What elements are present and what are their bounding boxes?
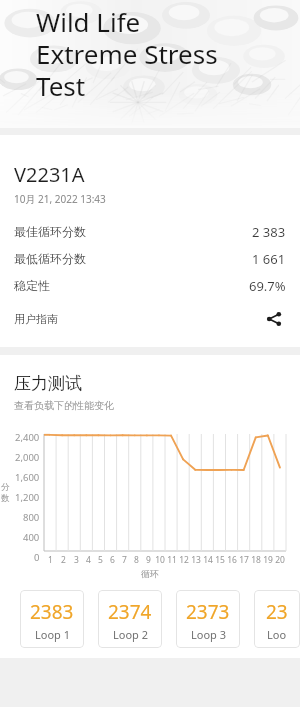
staticText: 2374 [108,599,152,625]
staticText: 19 [263,554,273,566]
button[interactable]: 最佳循环分数 [14,218,286,245]
staticText: V2231A [14,161,85,188]
staticText: 9 [146,554,151,566]
staticText: 1,600 [15,471,40,484]
staticText: 10 [155,554,165,566]
button[interactable]: 用户指南 [14,305,286,333]
staticText: 稳定性 [14,278,50,293]
staticText: 最低循环分数 [14,251,86,266]
button[interactable]: 稳定性 [14,272,286,299]
staticText: 11 [167,554,177,566]
staticText: Loop 3 [191,627,226,642]
staticText: 0 [34,551,40,564]
button[interactable]: 23 [254,590,300,648]
button[interactable]: 2383 [20,590,84,648]
staticText: 5 [98,554,103,566]
staticText: 16 [227,554,237,566]
staticText: 用户指南 [14,312,58,326]
staticText: 12 [179,554,189,566]
button[interactable]: 最低循环分数 [14,245,286,272]
staticText: Loo [267,627,287,642]
staticText: 8 [134,554,139,566]
staticText: 17 [239,554,249,566]
staticText: 2,000 [15,451,40,464]
staticText: 4 [86,554,91,566]
staticText: 6 [110,554,115,566]
staticText: 循环 [141,568,159,579]
staticText: 压力测试 [14,373,82,394]
staticText: 1,200 [15,491,40,504]
staticText: 分 [1,482,10,493]
staticText: 20 [275,554,285,566]
button[interactable]: 2374 [98,590,162,648]
staticText: 15 [215,554,225,566]
staticText: Wild Life [36,4,141,36]
staticText: Loop 1 [35,627,70,642]
staticText: 2 [61,554,66,566]
staticText: 13 [191,554,201,566]
staticText: 800 [23,511,40,524]
staticText: Extreme Stress [36,36,218,68]
staticText: 1 661 [252,250,286,268]
staticText: 7 [122,554,127,566]
staticText: Loop 2 [113,627,148,642]
staticText: 23 [266,599,288,625]
staticText: 数 [1,493,10,504]
button[interactable]: 2373 [176,590,240,648]
staticText: 查看负载下的性能变化 [14,399,114,412]
staticText: 18 [251,554,261,566]
staticText: 10月 21, 2022 13:43 [14,192,106,206]
staticText: 2 383 [252,223,286,241]
staticText: 2,400 [15,431,40,444]
staticText: 69.7% [249,277,286,295]
staticText: 400 [23,531,40,544]
button[interactable]: Share [262,307,286,331]
staticText: 14 [203,554,213,566]
staticText: 2373 [186,599,230,625]
staticText: 1 [48,554,53,566]
staticText: 最佳循环分数 [14,224,86,239]
staticText: 2383 [30,599,74,625]
staticText: Test [36,68,86,100]
staticText: 3 [74,554,79,566]
